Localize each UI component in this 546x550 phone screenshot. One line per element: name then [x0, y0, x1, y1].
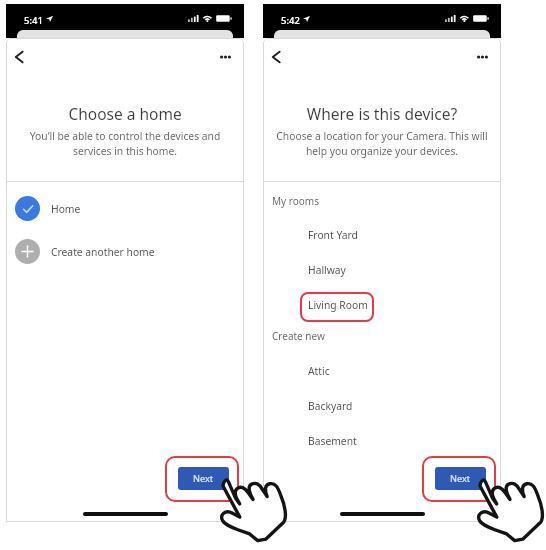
- staticText: 5:42: [281, 14, 300, 27]
- button[interactable]: Next: [178, 467, 229, 490]
- button[interactable]: Living Room: [263, 287, 501, 322]
- button[interactable]: Front Yard: [263, 217, 501, 252]
- staticText: You’ll be able to control the devices an…: [16, 129, 234, 158]
- staticText: Basement: [308, 434, 357, 448]
- button[interactable]: Attic: [263, 353, 501, 388]
- button[interactable]: Back: [263, 44, 289, 70]
- staticText: Next: [193, 472, 214, 485]
- staticText: My rooms: [272, 194, 319, 208]
- staticText: Choose a home: [6, 103, 244, 124]
- button[interactable]: Backyard: [263, 388, 501, 423]
- button[interactable]: Home: [6, 187, 244, 230]
- staticText: Create new: [272, 329, 325, 343]
- button[interactable]: Back: [6, 44, 32, 70]
- button[interactable]: Create another home: [6, 230, 244, 273]
- button[interactable]: More options: [212, 44, 238, 70]
- staticText: Hallway: [308, 263, 346, 277]
- button[interactable]: Hallway: [263, 252, 501, 287]
- staticText: Attic: [308, 364, 330, 378]
- staticText: Home: [51, 202, 81, 216]
- staticText: Living Room: [308, 298, 368, 312]
- staticText: Backyard: [308, 399, 353, 413]
- staticText: Create another home: [51, 245, 155, 259]
- staticText: Next: [450, 472, 471, 485]
- staticText: Choose a location for your Camera. This …: [273, 129, 491, 158]
- button[interactable]: Next: [435, 467, 486, 490]
- button[interactable]: More options: [469, 44, 495, 70]
- staticText: Where is this device?: [263, 103, 501, 124]
- staticText: 5:41: [24, 14, 43, 27]
- button[interactable]: Basement: [263, 423, 501, 458]
- staticText: Front Yard: [308, 228, 358, 242]
